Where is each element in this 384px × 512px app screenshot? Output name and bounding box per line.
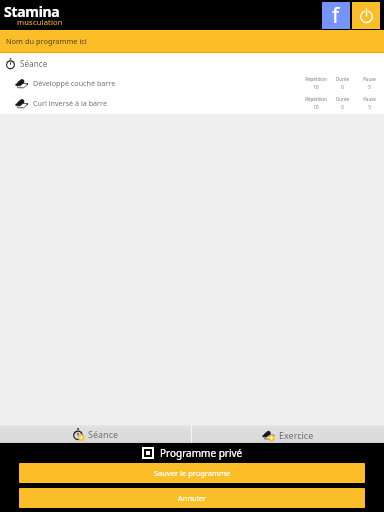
staticText: Sauver le programme <box>154 468 231 478</box>
button[interactable]: Exercice <box>192 425 384 443</box>
staticText: Programme privé <box>160 446 243 460</box>
staticText: musculation <box>17 17 63 27</box>
button[interactable]: Sauver le programme <box>19 463 365 483</box>
button[interactable]: Annuler <box>19 488 365 508</box>
button[interactable]: Développé couché barre <box>0 73 384 93</box>
staticText: Répétition <box>305 96 327 102</box>
staticText: 0 <box>341 84 344 90</box>
staticText: 10 <box>313 84 319 90</box>
staticText: Séance <box>88 428 119 440</box>
staticText: Pause <box>363 96 376 102</box>
staticText: 10 <box>313 104 319 110</box>
staticText: 0 <box>341 104 344 110</box>
button[interactable]: Partager sur Facebook <box>322 2 350 29</box>
staticText: Stamina <box>4 2 60 21</box>
button[interactable]: Séance <box>0 53 384 73</box>
staticText: Pause <box>363 76 376 82</box>
staticText: Durée <box>336 76 349 82</box>
staticText: Développé couché barre <box>33 78 116 88</box>
staticText: Durée <box>336 96 349 102</box>
staticText: 5 <box>368 104 371 110</box>
staticText: Curl inversé à la barre <box>33 98 107 108</box>
button[interactable]: Curl inversé à la barre <box>0 93 384 113</box>
button[interactable]: Programme privé <box>0 445 384 461</box>
staticText: Exercice <box>279 429 314 441</box>
button[interactable]: Séance <box>0 425 191 443</box>
staticText: 5 <box>368 84 371 90</box>
staticText: Séance <box>20 58 48 69</box>
staticText: Répétition <box>305 76 327 82</box>
staticText: Annuler <box>178 493 206 503</box>
button[interactable]: Quitter <box>352 2 380 29</box>
staticText: f <box>332 1 340 28</box>
staticText: Nom du programme ici <box>6 36 87 46</box>
